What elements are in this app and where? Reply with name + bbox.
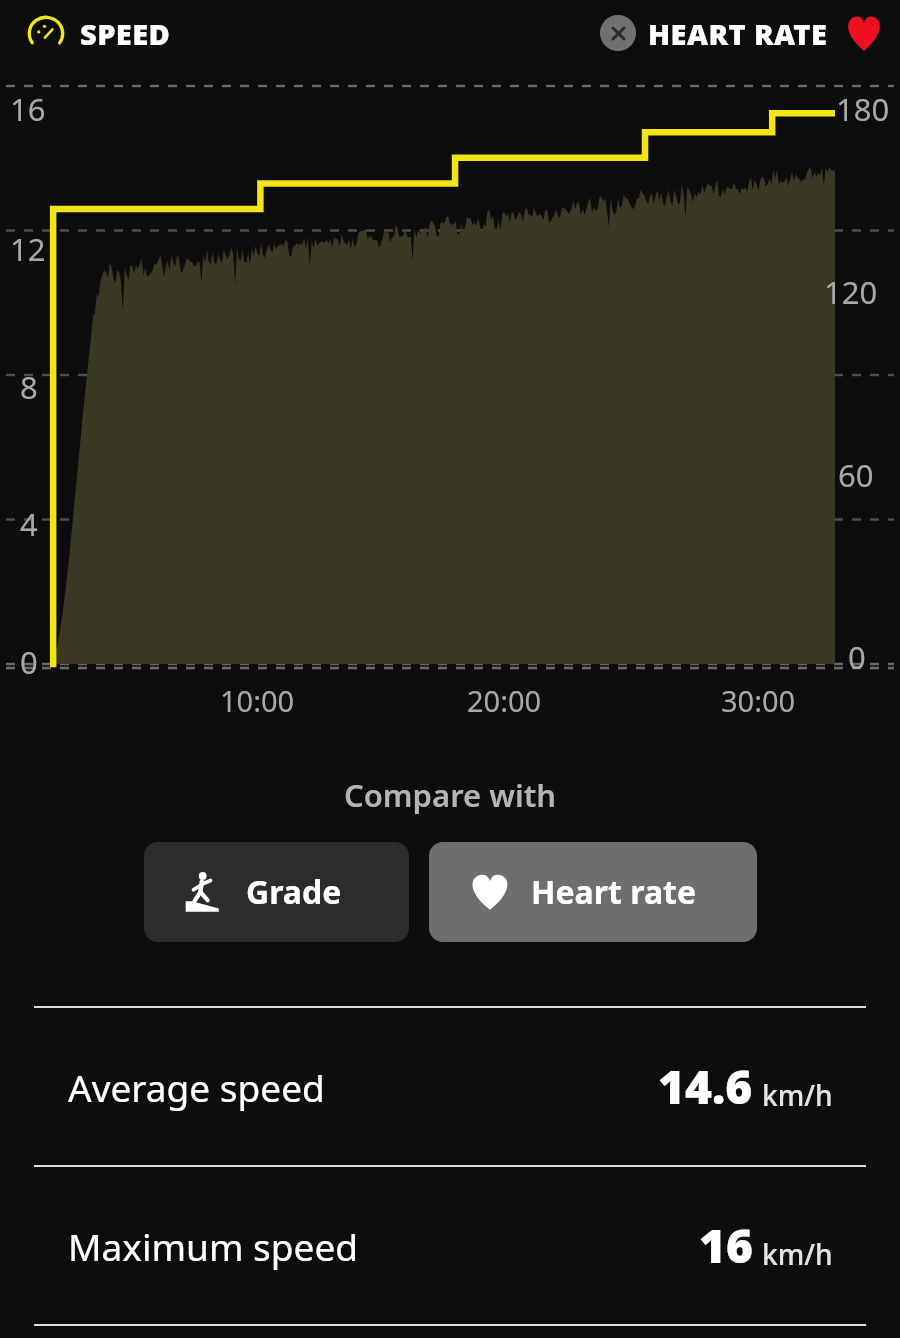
- staticText: 8: [20, 366, 38, 408]
- staticText: 0: [848, 636, 866, 678]
- button[interactable]: Grade: [144, 842, 409, 942]
- staticText: 60: [838, 454, 874, 496]
- staticText: 14.6: [658, 1055, 753, 1118]
- staticText: km/h: [762, 1235, 833, 1273]
- staticText: Compare with: [0, 774, 900, 816]
- button[interactable]: SPEED: [26, 13, 171, 53]
- staticText: 20:00: [467, 681, 542, 720]
- staticText: Grade: [246, 870, 342, 914]
- staticText: 180: [836, 88, 890, 130]
- button[interactable]: Heart rate: [429, 842, 757, 942]
- button[interactable]: Maximum speed: [0, 1167, 900, 1324]
- button[interactable]: Remove heart rate: [600, 15, 636, 51]
- staticText: km/h: [762, 1076, 833, 1114]
- staticText: 4: [20, 503, 38, 545]
- staticText: SPEED: [80, 14, 171, 53]
- staticText: HEART RATE: [648, 14, 828, 53]
- button[interactable]: HEART RATE: [648, 9, 888, 57]
- staticText: 16: [10, 88, 46, 130]
- staticText: 120: [824, 271, 878, 313]
- staticText: 30:00: [721, 681, 796, 720]
- staticText: 10:00: [220, 681, 295, 720]
- staticText: 0: [20, 641, 38, 683]
- staticText: Maximum speed: [68, 1221, 359, 1271]
- staticText: 12: [10, 228, 46, 270]
- button[interactable]: Average speed: [0, 1008, 900, 1165]
- staticText: Average speed: [68, 1062, 325, 1112]
- staticText: 16: [699, 1214, 753, 1277]
- staticText: Heart rate: [531, 870, 697, 914]
